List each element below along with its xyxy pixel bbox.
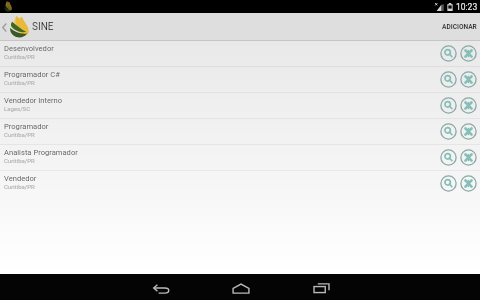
staticText: SINE xyxy=(32,21,54,33)
button[interactable]: Programador xyxy=(0,119,480,144)
button[interactable]: Recent apps xyxy=(299,276,343,300)
button[interactable]: Navigate up xyxy=(0,16,58,38)
button[interactable]: Home xyxy=(219,276,263,300)
button[interactable]: Delete xyxy=(458,171,478,196)
button[interactable]: Vendedor Interno xyxy=(0,93,480,118)
staticText: ADICIONAR xyxy=(442,23,477,31)
button[interactable]: Delete xyxy=(458,145,478,170)
button[interactable]: Search xyxy=(438,93,458,118)
staticText: Desenvolvedor xyxy=(4,44,54,53)
button[interactable]: Search xyxy=(438,41,458,66)
staticText: Curitiba/PR xyxy=(4,157,35,164)
button[interactable]: Search xyxy=(438,119,458,144)
staticText: Lages/SC xyxy=(4,105,31,112)
button[interactable]: Programador C# xyxy=(0,67,480,92)
staticText: Curitiba/PR xyxy=(4,183,35,190)
button[interactable]: Vendedor xyxy=(0,171,480,196)
staticText: Analista Programador xyxy=(4,148,78,157)
staticText: Curitiba/PR xyxy=(4,131,35,138)
button[interactable]: Desenvolvedor xyxy=(0,41,480,66)
staticText: Programador xyxy=(4,122,49,131)
staticText: Vendedor Interno xyxy=(4,96,63,105)
button[interactable]: Back xyxy=(139,276,183,300)
button[interactable]: Analista Programador xyxy=(0,145,480,170)
button[interactable]: Delete xyxy=(458,93,478,118)
button[interactable]: Search xyxy=(438,67,458,92)
button[interactable]: Search xyxy=(438,145,458,170)
button[interactable]: Delete xyxy=(458,67,478,92)
staticText: 10:23 xyxy=(456,2,478,12)
staticText: Programador C# xyxy=(4,70,60,79)
other: Navigate up xyxy=(2,22,7,33)
staticText: Curitiba/PR xyxy=(4,79,35,86)
button[interactable]: Delete xyxy=(458,119,478,144)
button[interactable]: Search xyxy=(438,171,458,196)
staticText: Vendedor xyxy=(4,174,37,183)
button[interactable]: ADICIONAR xyxy=(433,16,480,38)
staticText: Curitiba/PR xyxy=(4,53,35,60)
button[interactable]: Delete xyxy=(458,41,478,66)
